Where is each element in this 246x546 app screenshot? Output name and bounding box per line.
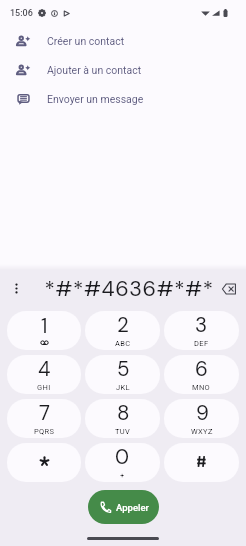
staticText: 4	[38, 356, 51, 383]
staticText: 2	[117, 312, 129, 339]
button[interactable]	[7, 443, 81, 482]
staticText: ABC	[115, 339, 131, 348]
button[interactable]: 9	[164, 399, 239, 438]
staticText: 3	[195, 312, 208, 339]
staticText: 6	[195, 356, 208, 383]
staticText: JKL	[116, 383, 130, 392]
button[interactable]: Appeler	[88, 490, 159, 524]
staticText: Ajouter à un contact	[47, 64, 142, 76]
button[interactable]: Ajouter à un contact	[0, 55, 246, 84]
staticText: 1	[41, 313, 48, 340]
staticText: +	[120, 471, 125, 480]
staticText: GHI	[37, 383, 51, 392]
button[interactable]: 5	[85, 355, 160, 394]
staticText: 5	[117, 356, 130, 383]
button[interactable]: Backspace	[212, 272, 246, 306]
staticText: PQRS	[34, 427, 55, 436]
staticText: DEF	[194, 339, 209, 348]
button[interactable]: 8	[85, 399, 160, 438]
staticText: *#*#4636#*#*	[44, 275, 214, 303]
staticText: 0	[115, 444, 130, 471]
staticText: 7	[39, 400, 50, 427]
button[interactable]: 4	[7, 355, 81, 394]
button[interactable]: More options	[0, 272, 33, 305]
staticText: Appeler	[116, 502, 149, 513]
button[interactable]	[164, 443, 239, 482]
staticText: 9	[196, 400, 209, 427]
button[interactable]: 7	[7, 399, 81, 438]
staticText: Envoyer un message	[47, 93, 144, 105]
button[interactable]: 1	[7, 311, 81, 350]
button[interactable]: Créer un contact	[0, 26, 246, 55]
button[interactable]: 3	[164, 311, 239, 350]
button[interactable]: Envoyer un message	[0, 84, 246, 113]
staticText: WXYZ	[191, 427, 213, 436]
staticText: TUV	[115, 427, 131, 436]
staticText: 15:06	[10, 8, 33, 19]
staticText: Créer un contact	[47, 35, 125, 47]
staticText: MNO	[192, 383, 211, 392]
button[interactable]: 0	[85, 443, 160, 482]
staticText: 8	[117, 400, 130, 427]
button[interactable]: 6	[164, 355, 239, 394]
button[interactable]: 2	[85, 311, 160, 350]
